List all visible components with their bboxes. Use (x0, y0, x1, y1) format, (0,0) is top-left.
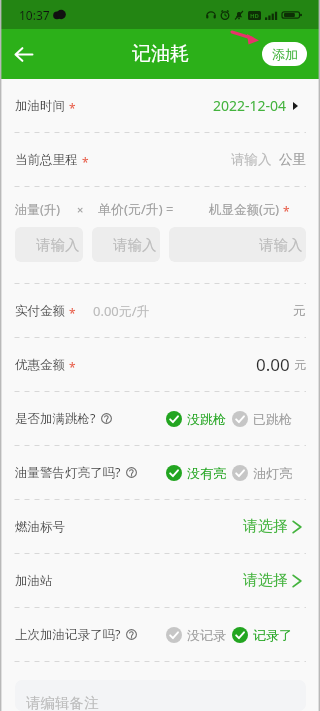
staticText: × (77, 202, 84, 217)
staticText: * (283, 203, 290, 219)
staticText: 机显金额(元) (209, 201, 280, 218)
staticText: 油灯亮 (253, 465, 292, 481)
staticText: * (69, 305, 76, 321)
staticText: 公里 (279, 151, 306, 168)
staticText: 实付金额 (15, 303, 65, 319)
staticText: 添加 (272, 46, 298, 62)
button[interactable]: Back (0, 31, 46, 77)
staticText: 请输入 (259, 236, 303, 254)
staticText: 请选择 (243, 571, 288, 590)
staticText: 已跳枪 (253, 411, 292, 427)
staticText: 优惠金额 (15, 357, 65, 373)
staticText: 2022-12-04 (213, 96, 287, 115)
staticText: 10:37 (19, 7, 50, 23)
button[interactable]: 实付金额 (0, 284, 320, 337)
button[interactable]: 当前总里程 (0, 133, 320, 186)
button[interactable]: 没记录 (166, 627, 226, 643)
button[interactable]: 已跳枪 (232, 411, 292, 427)
staticText: 0.00元/升 (93, 302, 150, 320)
staticText: HD (250, 12, 259, 20)
staticText: * (69, 100, 76, 116)
staticText: 油量警告灯亮了吗? (15, 464, 121, 481)
staticText: 加油站 (15, 573, 53, 589)
button[interactable]: 燃油标号 (0, 500, 320, 553)
button[interactable]: 加油站 (0, 554, 320, 607)
staticText: 请输入 (36, 236, 80, 254)
button[interactable]: 添加 (262, 42, 307, 66)
button[interactable]: 没有亮 (166, 465, 226, 481)
staticText: * (82, 154, 89, 170)
staticText: 元 (293, 303, 306, 319)
staticText: 请选择 (243, 517, 288, 536)
button[interactable]: 请输入 (92, 227, 160, 262)
staticText: 上次加油记录了吗? (15, 626, 121, 643)
staticText: 请输入 (113, 236, 157, 254)
button[interactable]: 记录了 (232, 627, 292, 643)
staticText: 当前总里程 (15, 152, 78, 168)
button[interactable]: 请编辑备注 (15, 680, 306, 711)
button[interactable]: 请输入 (169, 227, 306, 262)
staticText: 是否加满跳枪? (15, 410, 96, 427)
staticText: 元 (294, 357, 306, 372)
staticText: 加油时间 (15, 98, 65, 114)
staticText: 请输入 (231, 151, 272, 168)
button[interactable]: 油灯亮 (232, 465, 292, 481)
staticText: 燃油标号 (15, 519, 65, 535)
staticText: 记油耗 (132, 42, 189, 66)
staticText: 记录了 (253, 627, 292, 643)
staticText: 没跳枪 (187, 411, 226, 427)
staticText: * (69, 359, 76, 375)
staticText: 单价(元/升) = (98, 200, 174, 218)
button[interactable]: 没跳枪 (166, 411, 226, 427)
button[interactable]: 加油时间 (0, 79, 320, 132)
button[interactable]: 优惠金额 (0, 338, 320, 391)
staticText: 油量(升) (15, 201, 61, 218)
staticText: 请编辑备注 (26, 694, 99, 711)
staticText: 0.00 (256, 353, 290, 376)
staticText: 没记录 (187, 627, 226, 643)
button[interactable]: 请输入 (15, 227, 83, 262)
staticText: 没有亮 (187, 465, 226, 481)
